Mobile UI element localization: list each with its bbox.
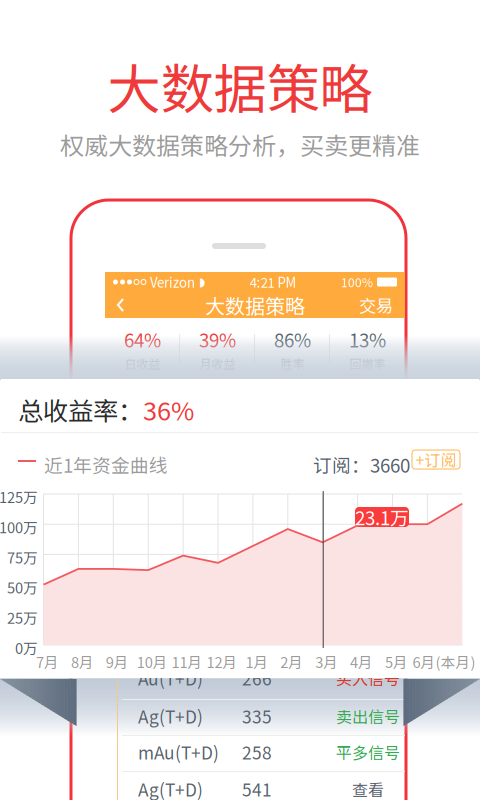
staticText: 订阅：3660 <box>313 451 410 478</box>
staticText: 86% <box>274 326 311 353</box>
staticText: 1月 <box>245 651 268 672</box>
staticText: 4:21 PM <box>249 272 296 292</box>
staticText: 6月(本月) <box>412 651 475 672</box>
staticText: 10月 <box>137 651 168 672</box>
staticText: 125万 <box>0 486 38 507</box>
staticText: 0万 <box>15 637 38 658</box>
staticText: 4月 <box>350 651 373 672</box>
staticText: 64% <box>124 326 161 353</box>
staticText: 50万 <box>7 577 38 598</box>
staticText: 3月 <box>315 651 338 672</box>
staticText: 查看 <box>352 777 384 800</box>
staticText: 541 <box>242 776 272 800</box>
staticText: 266 <box>242 665 272 691</box>
staticText: Ag(T+D) <box>138 703 203 729</box>
staticText: 5月 <box>385 651 408 672</box>
staticText: 大数据策略 <box>205 290 305 319</box>
staticText: 75万 <box>7 546 38 568</box>
staticText: 回撤率 <box>349 355 385 372</box>
staticText: +订阅 <box>415 448 456 471</box>
staticText: 36% <box>143 391 194 428</box>
button[interactable]: Ag(T+D) <box>118 771 406 800</box>
staticText: 12月 <box>206 651 237 672</box>
button[interactable]: +订阅 <box>412 450 460 469</box>
staticText: 近1年资金曲线 <box>44 451 168 478</box>
staticText: 100% <box>341 273 373 291</box>
button[interactable]: Back <box>117 298 127 312</box>
staticText: 月收益 <box>199 355 235 372</box>
button[interactable]: Au(T+D) <box>118 660 406 696</box>
staticText: 大数据策略 <box>107 47 372 124</box>
staticText: 13% <box>349 326 386 353</box>
staticText: ◗ <box>199 275 205 289</box>
staticText: 25万 <box>7 607 38 628</box>
staticText: 平多信号 <box>336 740 400 764</box>
staticText: 日收益 <box>124 355 160 372</box>
staticText: 39% <box>199 326 236 353</box>
staticText: 总收益率： <box>18 391 143 428</box>
staticText: 258 <box>242 739 272 765</box>
staticText: mAu(T+D) <box>138 739 219 765</box>
staticText: 卖出信号 <box>336 704 400 728</box>
button[interactable]: Ag(T+D) <box>118 698 406 734</box>
staticText: 交易 <box>359 292 393 318</box>
staticText: 100万 <box>0 516 38 537</box>
staticText: 7月 <box>36 651 59 672</box>
staticText: 9月 <box>106 651 129 672</box>
staticText: 权威大数据策略分析，买卖更精准 <box>60 127 420 162</box>
staticText: Ag(T+D) <box>138 776 203 800</box>
staticText: 买入信号 <box>336 666 400 690</box>
staticText: 335 <box>242 703 272 729</box>
staticText: Au(T+D) <box>138 665 203 691</box>
staticText: Verizon <box>150 272 195 292</box>
staticText: 11月 <box>172 651 203 672</box>
button[interactable]: mAu(T+D) <box>118 734 406 770</box>
staticText: 胜率 <box>280 355 304 372</box>
staticText: 2月 <box>280 651 303 672</box>
staticText: 8月 <box>71 651 94 672</box>
staticText: 23.1万 <box>355 503 409 530</box>
button[interactable]: 交易 <box>359 292 393 318</box>
